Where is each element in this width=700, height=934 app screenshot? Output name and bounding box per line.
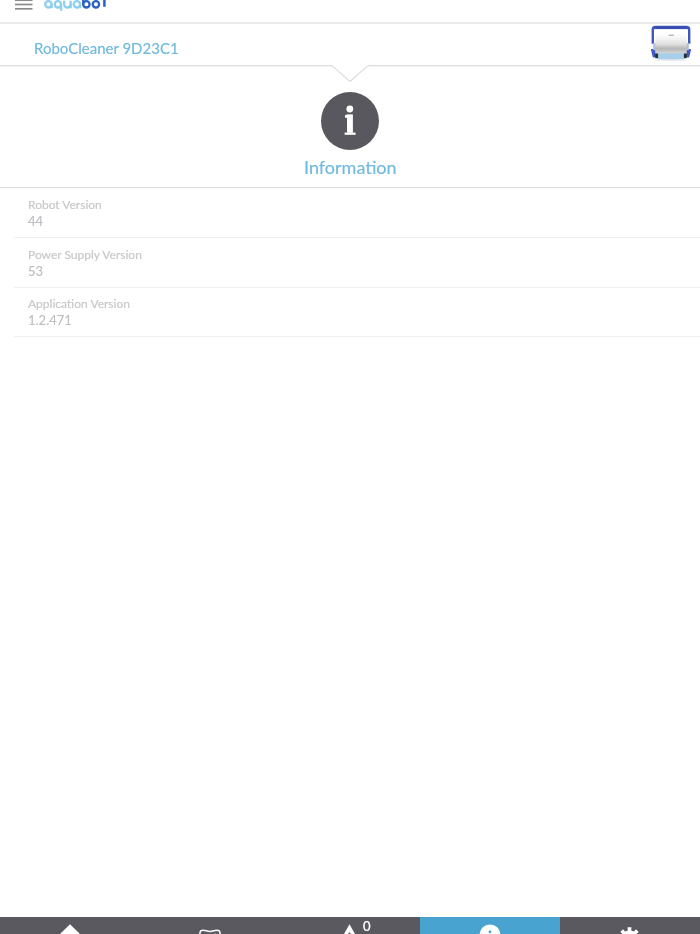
button[interactable]: Information bbox=[420, 917, 560, 934]
staticText: 1.2.471 bbox=[28, 312, 72, 328]
staticText: Power Supply Version bbox=[28, 247, 142, 261]
button[interactable]: Home bbox=[0, 917, 140, 934]
staticText: RoboCleaner 9D23C1 bbox=[34, 39, 179, 57]
button[interactable]: Robot Version bbox=[0, 188, 700, 237]
staticText: Application Version bbox=[28, 296, 130, 310]
button[interactable]: Menu bbox=[0, 0, 35, 22]
button[interactable]: Information bbox=[321, 92, 379, 150]
button[interactable]: Robot bbox=[646, 24, 700, 65]
staticText: 53 bbox=[28, 263, 44, 279]
button[interactable]: Power Supply Version bbox=[0, 238, 700, 287]
staticText: 44 bbox=[28, 213, 44, 229]
staticText: Information bbox=[304, 156, 397, 178]
button[interactable]: Alerts bbox=[280, 917, 420, 934]
button[interactable]: Settings bbox=[560, 917, 700, 934]
staticText: 0 bbox=[363, 918, 371, 934]
button[interactable]: Application Version bbox=[0, 288, 700, 336]
staticText: Robot Version bbox=[28, 197, 102, 211]
button[interactable]: Control bbox=[140, 917, 280, 934]
